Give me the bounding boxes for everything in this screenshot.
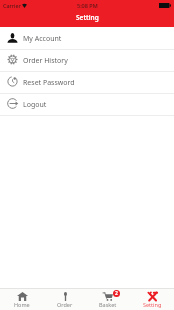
button[interactable]: Logout (0, 94, 174, 116)
staticText: My Account (23, 34, 62, 44)
staticText: Carrier (3, 2, 21, 9)
button[interactable]: 2 (86, 289, 130, 308)
staticText: Order History (23, 56, 68, 66)
staticText: Setting (143, 301, 162, 308)
staticText: 5:08 PM (77, 2, 98, 9)
button[interactable]: Setting (130, 289, 174, 308)
button[interactable]: Order History (0, 50, 174, 72)
staticText: Home (14, 301, 30, 308)
staticText: Basket (99, 301, 117, 308)
staticText: 2 (115, 290, 118, 297)
button[interactable]: Order (43, 289, 86, 308)
button[interactable]: Reset Password (0, 72, 174, 94)
button[interactable]: My Account (0, 28, 174, 50)
staticText: Setting (76, 13, 99, 22)
button[interactable]: Home (0, 289, 43, 308)
staticText: Logout (23, 100, 47, 110)
staticText: Order (57, 301, 73, 308)
staticText: Reset Password (23, 78, 75, 88)
